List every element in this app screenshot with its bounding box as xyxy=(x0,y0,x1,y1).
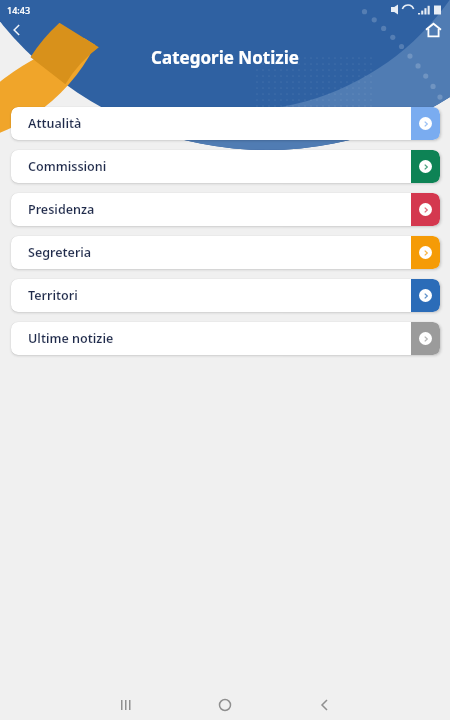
staticText: Ultime notizie xyxy=(28,330,114,347)
button[interactable]: Back xyxy=(8,21,26,39)
button[interactable]: Commissioni xyxy=(11,150,440,183)
staticText: 14:43 xyxy=(7,4,31,16)
staticText: Commissioni xyxy=(28,158,107,175)
button[interactable]: Attualità xyxy=(11,107,440,140)
button[interactable]: Ultime notizie xyxy=(11,322,440,355)
button[interactable]: Segreteria xyxy=(11,236,440,269)
button[interactable]: Home xyxy=(425,22,442,39)
staticText: Presidenza xyxy=(28,201,95,218)
staticText: Segreteria xyxy=(28,244,92,261)
staticText: Categorie Notizie xyxy=(151,46,299,68)
staticText: Territori xyxy=(28,287,78,304)
staticText: Attualità xyxy=(28,115,82,132)
button[interactable]: Territori xyxy=(11,279,440,312)
button[interactable]: Presidenza xyxy=(11,193,440,226)
